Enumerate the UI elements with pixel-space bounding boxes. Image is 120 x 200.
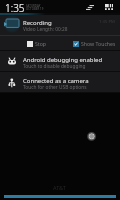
button[interactable]: Connected as a camera <box>0 72 120 92</box>
staticText: 1:35 PM <box>99 19 115 25</box>
staticText: OCTOBER 19 <box>26 7 44 11</box>
staticText: Connected as a camera <box>23 77 89 85</box>
button[interactable]: Quick settings <box>101 0 115 13</box>
button[interactable]: Clear all notifications <box>83 1 96 13</box>
button[interactable]: Show Touches <box>67 37 115 50</box>
staticText: SATURDAY <box>26 4 41 8</box>
staticText: Video Length: 00:28 <box>23 26 68 33</box>
staticText: Recording <box>23 19 52 27</box>
button[interactable]: Stop <box>22 37 58 50</box>
staticText: AT&T <box>53 184 66 191</box>
staticText: Android debugging enabled <box>23 56 103 64</box>
button[interactable]: Android debugging enabled <box>0 51 120 71</box>
staticText: Stop <box>35 40 47 47</box>
staticText: Touch for other USB options <box>23 84 87 91</box>
staticText: Touch to disable debugging <box>23 63 86 70</box>
staticText: Show Touches <box>81 40 115 47</box>
staticText: 1:35 <box>5 1 25 14</box>
